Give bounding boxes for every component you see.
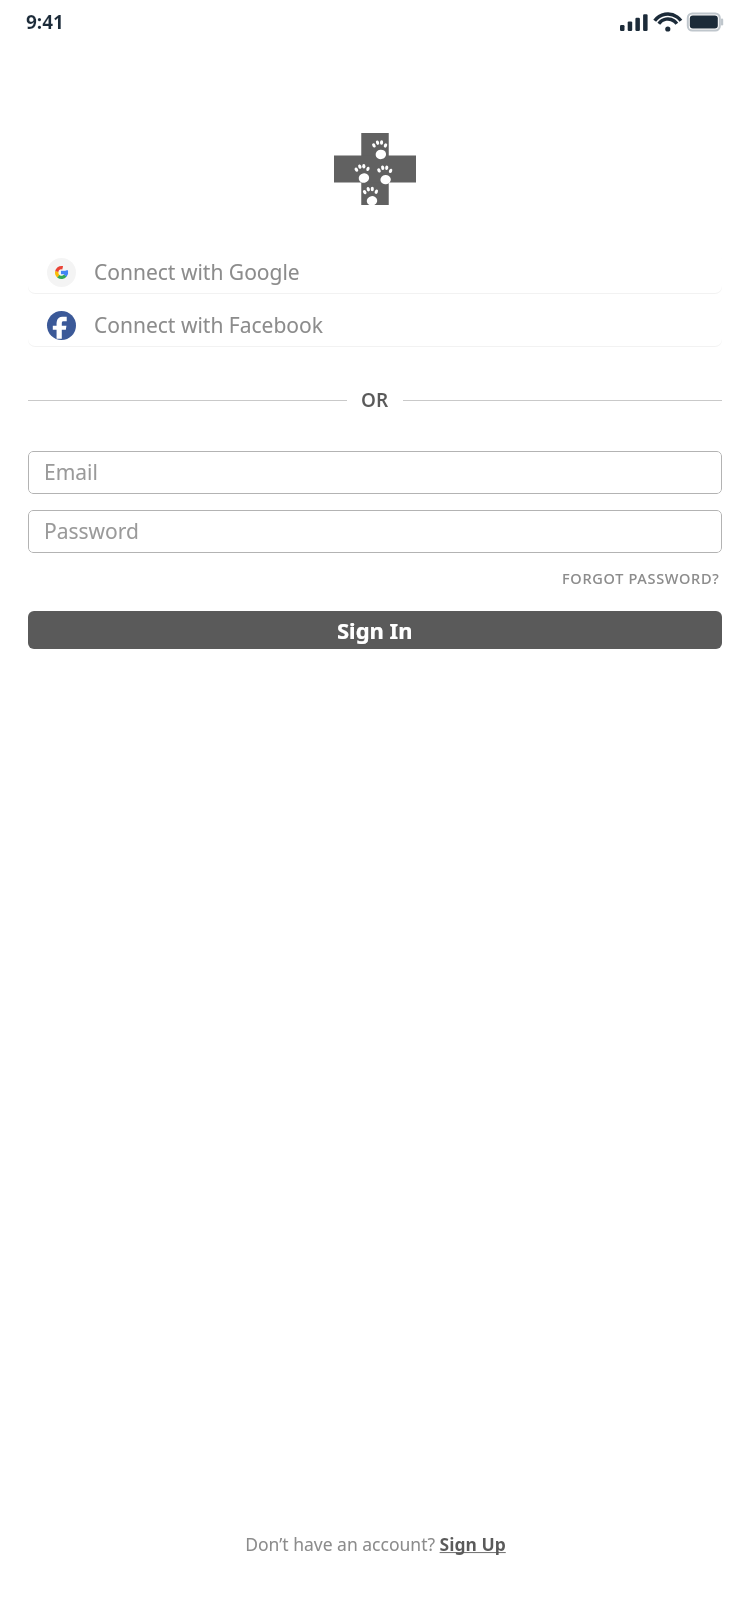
button[interactable]: Connect with Google (28, 252, 722, 293)
button[interactable]: Connect with Facebook (28, 305, 722, 346)
staticText: Password (44, 517, 139, 546)
button[interactable]: Sign In (28, 611, 722, 649)
staticText: OR (361, 387, 389, 413)
staticText: 9:41 (26, 9, 64, 35)
staticText: FORGOT PASSWORD? (562, 568, 720, 588)
button[interactable]: FORGOT PASSWORD? (560, 563, 722, 593)
button[interactable]: Don’t have an account? Sign Up (239, 1526, 512, 1562)
button[interactable]: Password (28, 510, 722, 553)
staticText: Email (44, 458, 98, 487)
button[interactable]: Email (28, 451, 722, 494)
staticText: Connect with Facebook (94, 311, 323, 340)
staticText: Sign In (337, 615, 413, 645)
staticText: Connect with Google (94, 258, 300, 287)
